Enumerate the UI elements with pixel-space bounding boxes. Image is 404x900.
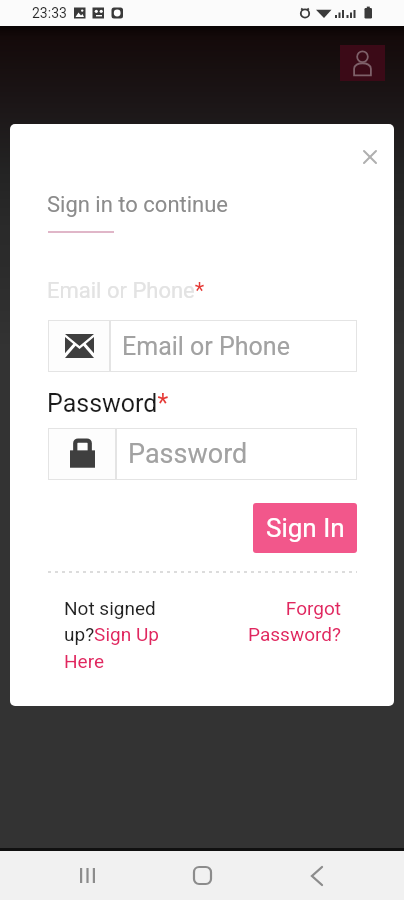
staticText: Not signed up?Sign Up Here [64,597,164,673]
button[interactable]: Back [289,851,345,900]
button[interactable]: Profile [340,45,385,81]
button[interactable]: Home [174,851,230,900]
button[interactable]: Not signed up?Sign Up Here [64,597,164,673]
staticText: 23:33 [32,5,67,21]
button[interactable]: Sign In [253,503,357,553]
staticText: Email or Phone [122,332,290,361]
staticText: Email or Phone* [47,278,205,304]
staticText: Password* [47,389,169,418]
button[interactable]: Email or Phone [48,320,357,372]
staticText: Forgot Password? [226,597,341,646]
staticText: Sign In [266,513,345,543]
staticText: Sign in to continue [47,192,229,218]
button[interactable]: Forgot Password? [226,597,341,646]
staticText: Password [128,438,248,470]
button[interactable]: Close [353,140,387,174]
button[interactable]: Password [48,428,357,480]
button[interactable]: Recents [59,851,115,900]
